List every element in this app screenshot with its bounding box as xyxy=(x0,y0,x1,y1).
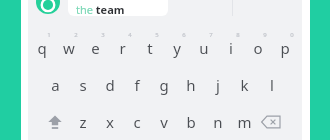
staticText: c xyxy=(133,112,141,132)
button[interactable]: Backspace xyxy=(258,109,284,135)
staticText: 8 xyxy=(233,31,243,40)
button[interactable]: b xyxy=(177,105,204,139)
button[interactable]: w xyxy=(55,31,82,65)
button[interactable]: d xyxy=(96,68,123,102)
staticText: a xyxy=(51,75,60,95)
staticText: w xyxy=(63,38,75,58)
button[interactable]: a xyxy=(42,68,69,102)
button[interactable]: t xyxy=(136,31,163,65)
button[interactable]: x xyxy=(96,105,123,139)
staticText: f xyxy=(134,75,140,95)
button[interactable]: f xyxy=(123,68,150,102)
staticText: i xyxy=(229,38,233,58)
staticText: 1 xyxy=(44,31,54,40)
staticText: g xyxy=(159,75,169,95)
staticText: 6 xyxy=(179,31,189,40)
staticText: 0 xyxy=(287,31,297,40)
button[interactable]: h xyxy=(177,68,204,102)
staticText: b xyxy=(186,112,196,132)
button[interactable]: o xyxy=(244,31,271,65)
staticText: 3 xyxy=(98,31,108,40)
button[interactable]: g xyxy=(150,68,177,102)
button[interactable]: y xyxy=(163,31,190,65)
button[interactable]: n xyxy=(204,105,231,139)
staticText: e xyxy=(91,38,100,58)
staticText: 9 xyxy=(260,31,270,40)
button[interactable]: r xyxy=(109,31,136,65)
button[interactable]: e xyxy=(82,31,109,65)
button[interactable]: m xyxy=(231,105,258,139)
button[interactable]: j xyxy=(204,68,231,102)
staticText: o xyxy=(253,38,263,58)
staticText: z xyxy=(79,112,87,132)
button[interactable]: s xyxy=(69,68,96,102)
staticText: d xyxy=(105,75,115,95)
button[interactable]: i xyxy=(217,31,244,65)
staticText: s xyxy=(79,75,87,95)
button[interactable]: v xyxy=(150,105,177,139)
button[interactable]: Shift xyxy=(42,109,68,135)
staticText: v xyxy=(160,112,168,132)
staticText: x xyxy=(106,112,114,132)
staticText: the team xyxy=(76,2,125,16)
staticText: q xyxy=(37,38,47,58)
button[interactable]: u xyxy=(190,31,217,65)
staticText: u xyxy=(199,38,209,58)
staticText: k xyxy=(240,75,249,95)
staticText: h xyxy=(186,75,196,95)
button[interactable]: q xyxy=(28,31,55,65)
staticText: r xyxy=(119,38,126,58)
button[interactable]: z xyxy=(69,105,96,139)
staticText: 4 xyxy=(125,31,135,40)
staticText: y xyxy=(173,38,181,58)
button[interactable]: p xyxy=(271,31,298,65)
staticText: 7 xyxy=(206,31,216,40)
button[interactable]: c xyxy=(123,105,150,139)
button[interactable]: k xyxy=(231,68,258,102)
staticText: n xyxy=(213,112,223,132)
staticText: m xyxy=(237,112,252,132)
staticText: 5 xyxy=(152,31,162,40)
staticText: t xyxy=(147,38,153,58)
button[interactable]: the team xyxy=(68,0,168,16)
staticText: p xyxy=(280,38,290,58)
button[interactable]: l xyxy=(258,68,285,102)
button[interactable]: Contact avatar xyxy=(36,0,60,14)
staticText: l xyxy=(270,75,274,95)
staticText: 2 xyxy=(71,31,81,40)
staticText: j xyxy=(216,75,220,95)
